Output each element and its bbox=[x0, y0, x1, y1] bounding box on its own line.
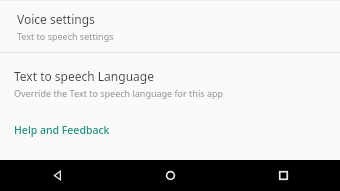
button[interactable]: Text to speech Language bbox=[0, 66, 340, 101]
staticText: Voice settings bbox=[17, 11, 95, 27]
button[interactable]: Back bbox=[0, 160, 114, 191]
staticText: Help and Feedback bbox=[14, 123, 110, 137]
button[interactable]: Home bbox=[114, 160, 227, 191]
button[interactable]: Help and Feedback bbox=[0, 121, 340, 143]
staticText: Text to speech settings bbox=[17, 30, 114, 42]
staticText: Text to speech Language bbox=[14, 68, 154, 84]
button[interactable]: Voice settings bbox=[0, 9, 340, 44]
staticText: Override the Text to speech language for… bbox=[14, 87, 224, 99]
button[interactable]: Recent apps bbox=[227, 160, 340, 191]
